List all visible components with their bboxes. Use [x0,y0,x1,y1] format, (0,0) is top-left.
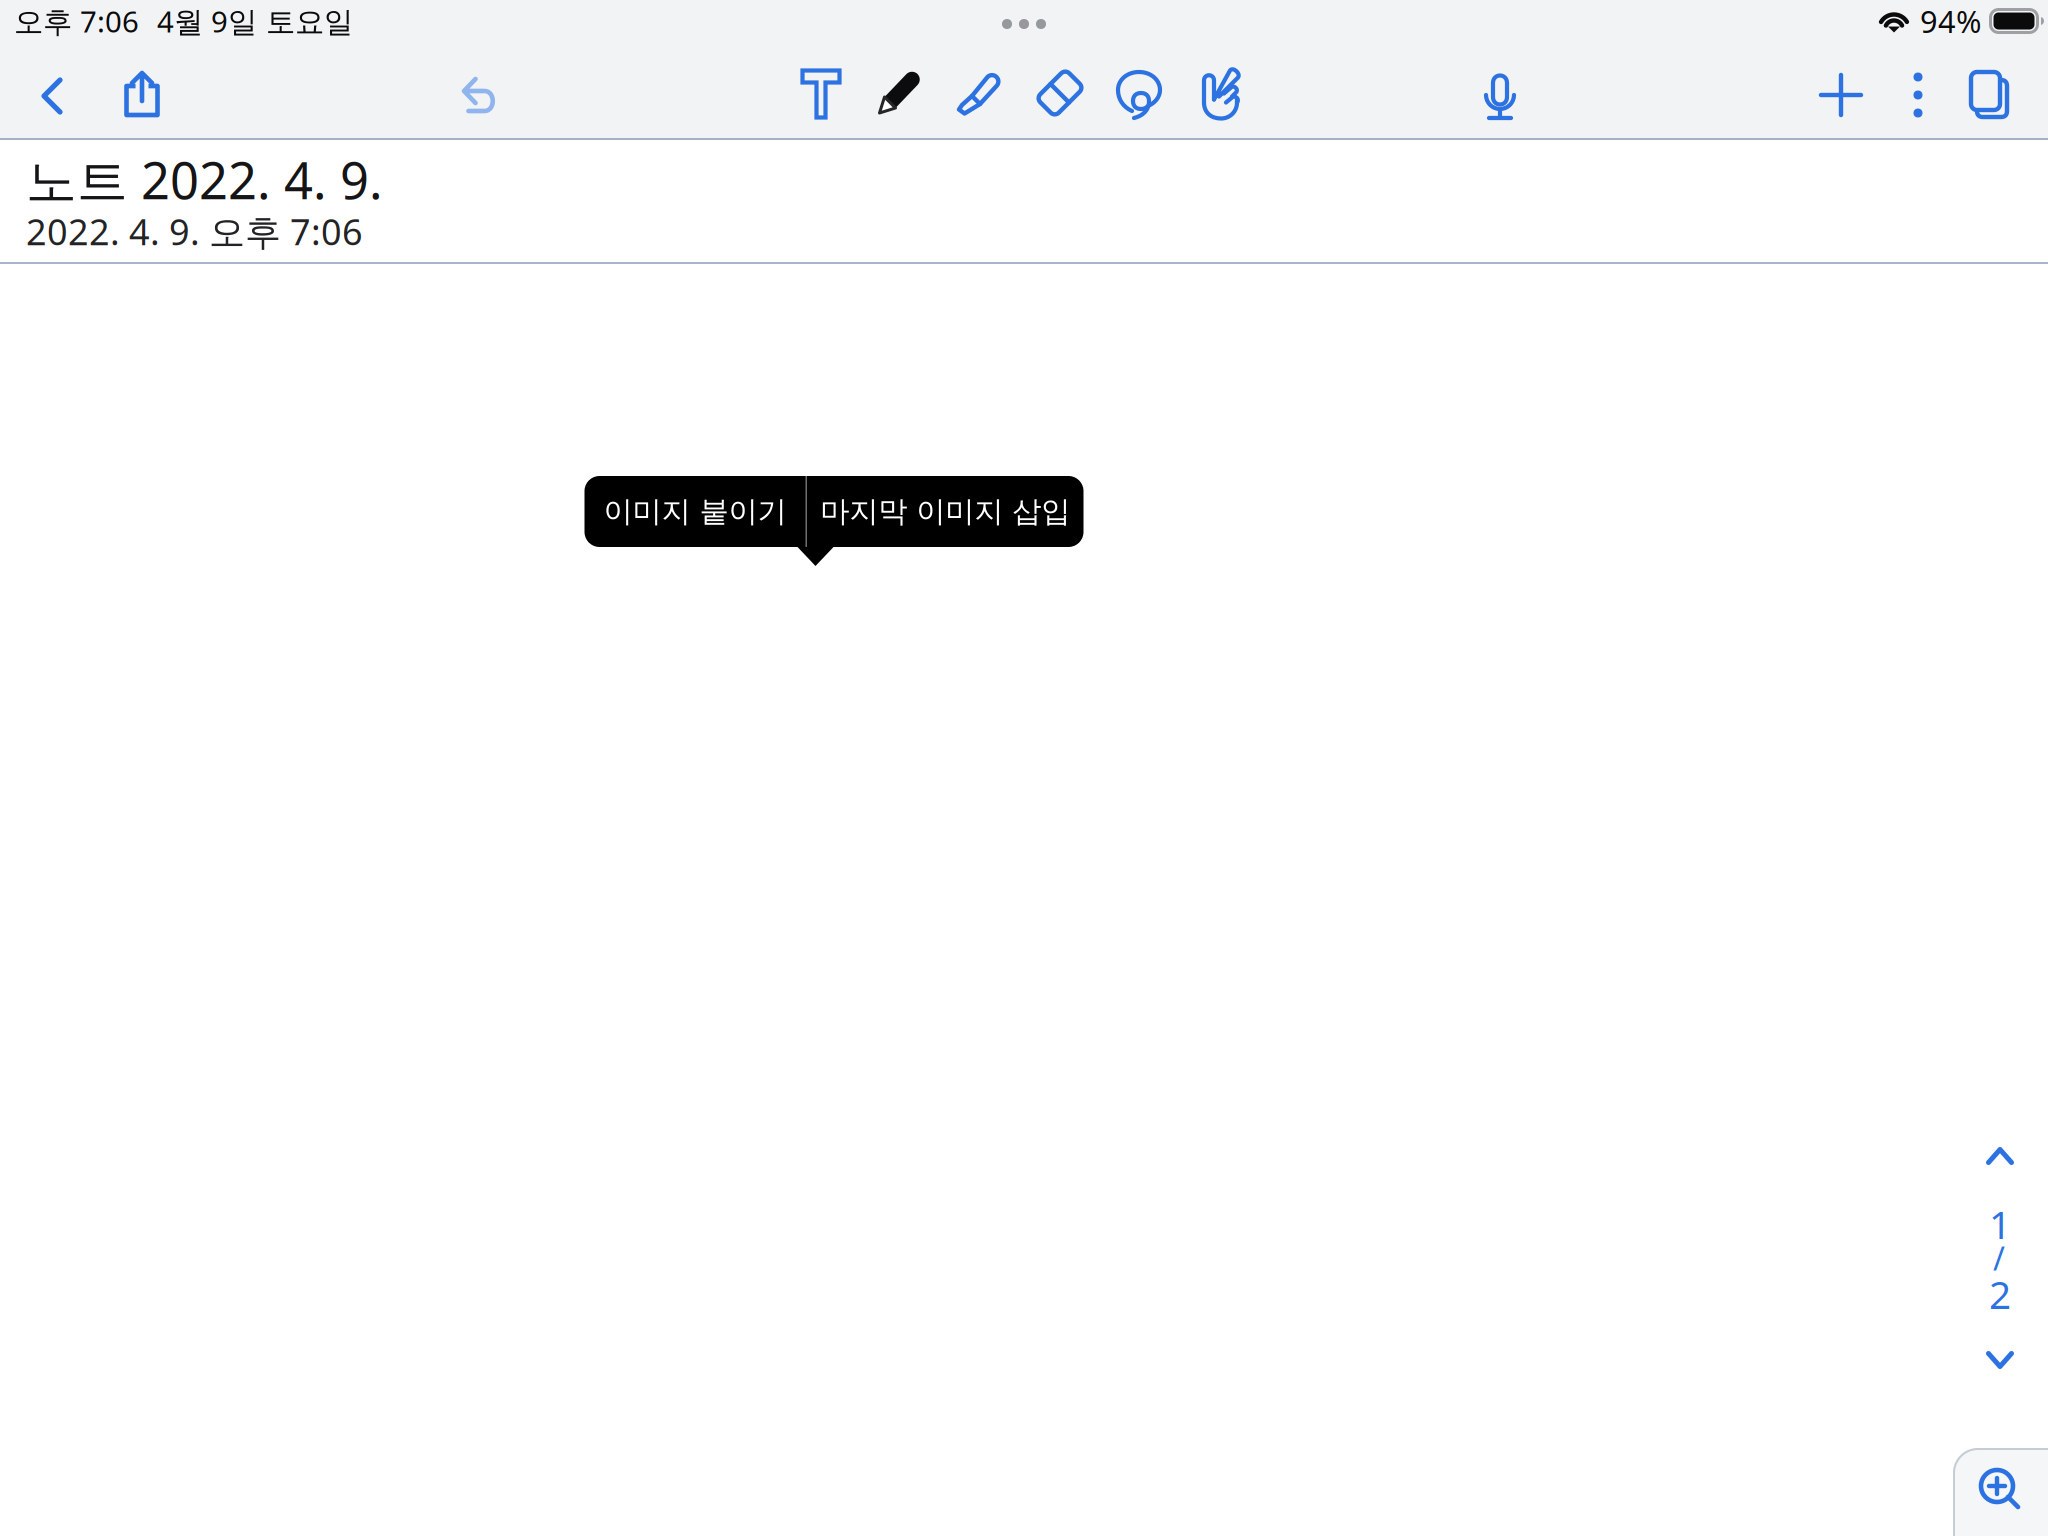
button[interactable]: 이미지 붙이기 [584,476,805,547]
button[interactable]: Back [41,77,63,115]
button[interactable]: Zoom in [1953,1448,2048,1536]
staticText: 94% [1920,1,1981,41]
button[interactable]: Undo [461,75,498,115]
button[interactable]: Lasso [1115,68,1163,120]
button[interactable]: 마지막 이미지 삽입 [807,476,1083,547]
button[interactable]: Previous page [1986,1146,2014,1165]
button[interactable]: Next page [1986,1350,2014,1369]
button[interactable]: Text tool [800,68,842,120]
staticText: 마지막 이미지 삽입 [820,493,1070,529]
staticText: 2022. 4. 9. 오후 7:06 [26,207,363,255]
button[interactable]: Highlighter [956,69,1002,117]
staticText: 노트 2022. 4. 9. [26,146,383,213]
button[interactable]: Add [1819,73,1863,117]
button[interactable]: Dictation [1483,70,1517,122]
staticText: 4월 9일 토요일 [157,1,353,40]
button[interactable]: Pen [876,69,921,117]
button[interactable]: Share [121,70,162,118]
staticText: 오후 7:06 [14,1,139,40]
staticText: 1 [1989,1198,2011,1250]
button[interactable]: Eraser [1036,69,1083,116]
staticText: / [1993,1237,2005,1279]
staticText: 2 [1989,1268,2011,1320]
button[interactable]: Pages [1969,70,2011,120]
button[interactable]: More [1907,72,1929,117]
staticText: 이미지 붙이기 [603,493,786,529]
button[interactable]: Hand tool [1194,65,1242,120]
